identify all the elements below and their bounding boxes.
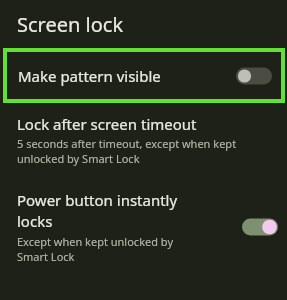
staticText: Lock after screen timeout [17, 114, 197, 134]
button[interactable]: Lock after screen timeout [0, 105, 287, 174]
button[interactable]: Make pattern visible [9, 54, 279, 97]
button[interactable]: Power button instantly locks [0, 190, 287, 264]
button[interactable]: Power button instantly locks toggle, on [238, 214, 282, 240]
button[interactable]: Make pattern visible toggle, off [232, 63, 276, 89]
staticText: 5 seconds after timeout, except when kep… [17, 136, 275, 166]
staticText: Power button instantly locks [17, 190, 182, 232]
staticText: Make pattern visible [18, 66, 232, 86]
staticText: Except when kept unlocked by Smart Lock [17, 234, 197, 264]
staticText: Screen lock [17, 11, 124, 38]
